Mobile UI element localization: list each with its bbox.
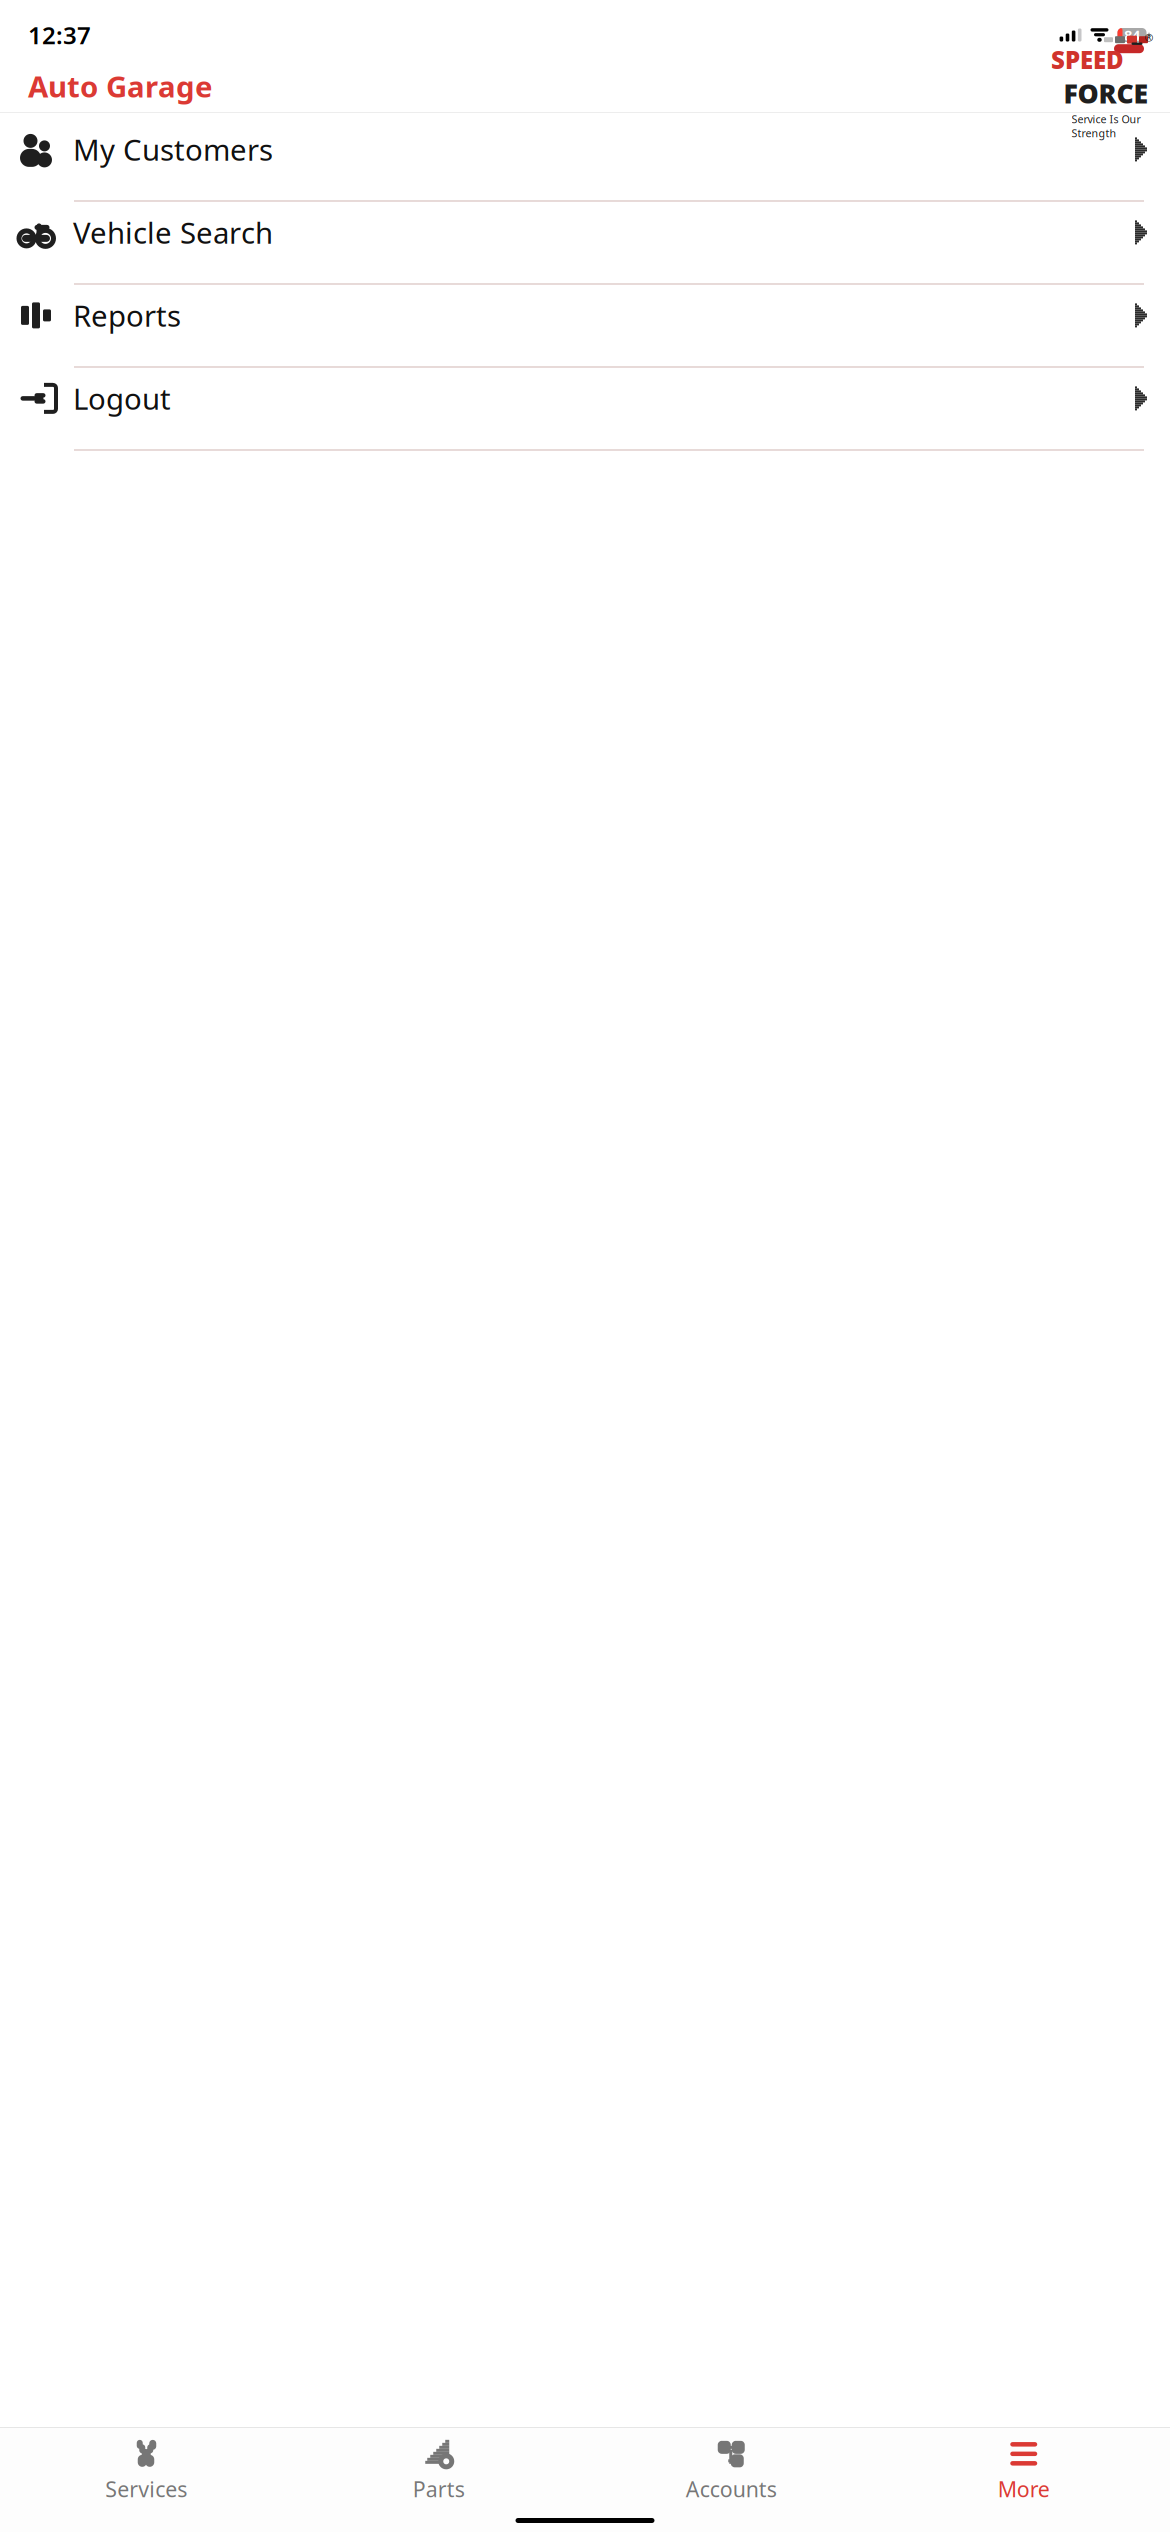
staticText: Service Is Our Strength — [1071, 112, 1140, 140]
staticText: FORCE — [1063, 76, 1148, 111]
staticText: Services — [105, 2475, 187, 2503]
button[interactable]: More — [877, 2438, 1170, 2502]
staticText: 84 — [1124, 25, 1140, 45]
staticText: Accounts — [686, 2475, 777, 2503]
button[interactable]: Vehicle Search — [0, 202, 1170, 285]
button[interactable]: Accounts — [585, 2438, 877, 2502]
staticText: Logout — [73, 379, 171, 418]
staticText: Auto Garage — [28, 66, 213, 105]
staticText: ® — [1144, 31, 1153, 45]
button[interactable]: My Customers — [0, 119, 1170, 202]
staticText: Vehicle Search — [73, 213, 273, 252]
staticText: More — [998, 2475, 1050, 2503]
staticText: Reports — [73, 296, 181, 335]
staticText: 12:37 — [28, 19, 91, 51]
staticText: My Customers — [73, 130, 273, 169]
button[interactable]: Parts — [292, 2438, 585, 2502]
button[interactable]: Services — [0, 2438, 292, 2502]
staticText: Parts — [413, 2475, 465, 2503]
button[interactable]: Logout — [0, 368, 1170, 451]
button[interactable]: Reports — [0, 285, 1170, 368]
staticText: SPEED — [1051, 44, 1124, 76]
